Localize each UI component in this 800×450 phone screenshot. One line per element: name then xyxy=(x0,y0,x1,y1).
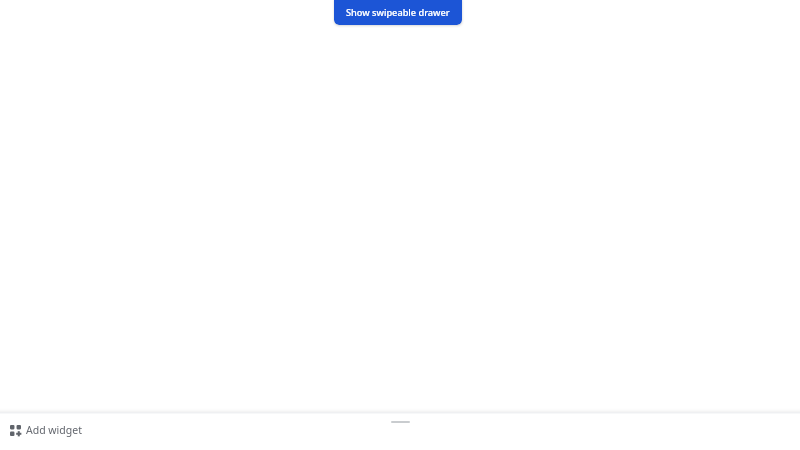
button[interactable]: Add widget xyxy=(0,418,92,442)
staticText: Show swipeable drawer xyxy=(346,6,450,19)
button[interactable]: Show swipeable drawer xyxy=(334,0,462,25)
other: Add widget xyxy=(10,425,21,436)
staticText: Add widget xyxy=(26,423,82,437)
